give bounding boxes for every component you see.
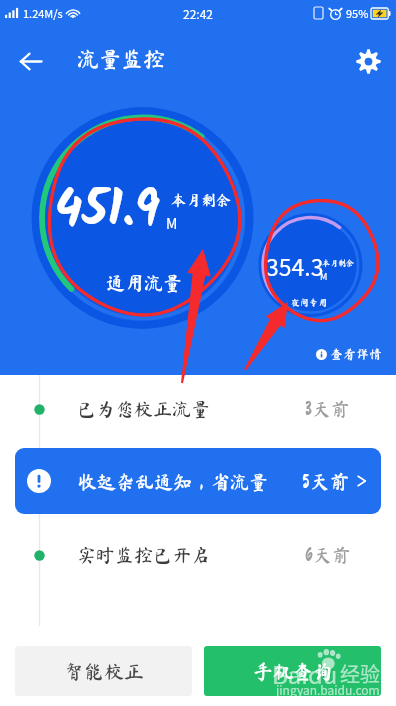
staticText: 手机查询 bbox=[253, 661, 333, 681]
staticText: 5天前 bbox=[302, 471, 350, 491]
staticText: M bbox=[166, 213, 178, 233]
button[interactable]: 查看详情 bbox=[316, 348, 383, 361]
staticText: 354.3 bbox=[266, 249, 324, 282]
staticText: 查看详情 bbox=[330, 348, 383, 361]
button[interactable]: 手机查询 bbox=[204, 646, 381, 696]
staticText: M bbox=[320, 270, 328, 283]
button[interactable]: 实时监控已开启 bbox=[0, 521, 396, 587]
staticText: jingyan.baidu.com bbox=[276, 681, 380, 698]
button[interactable]: Back bbox=[8, 39, 52, 83]
staticText: 22:42 bbox=[183, 5, 213, 22]
button[interactable]: 夜间专用 354.3 M bbox=[259, 214, 361, 316]
staticText: 收起杂乱通知，省流量 bbox=[78, 472, 269, 491]
staticText: 6天前 bbox=[305, 545, 351, 564]
button[interactable]: 收起杂乱通知，省流量 bbox=[15, 448, 381, 514]
staticText: 本月剩余 bbox=[171, 193, 232, 208]
staticText: 智能校正 bbox=[64, 661, 144, 681]
staticText: 本月剩余 bbox=[322, 259, 354, 267]
staticText: 95% bbox=[346, 5, 369, 21]
staticText: 已为您校正流量 bbox=[77, 399, 211, 418]
button[interactable]: 已为您校正流量 bbox=[0, 375, 396, 441]
staticText: Baidu bbox=[272, 656, 338, 691]
staticText: 1.24M/s bbox=[23, 5, 63, 21]
button[interactable]: 通用流量 451.9 M bbox=[35, 111, 250, 326]
staticText: 3天前 bbox=[305, 399, 350, 418]
button[interactable]: 智能校正 bbox=[15, 646, 192, 696]
staticText: 经验 bbox=[340, 659, 380, 688]
staticText: 通用流量 bbox=[106, 273, 183, 292]
button[interactable]: Settings bbox=[346, 39, 390, 83]
staticText: 实时监控已开启 bbox=[77, 545, 211, 564]
staticText: 451.9 bbox=[55, 172, 160, 252]
staticText: 夜间专用 bbox=[291, 298, 328, 307]
staticText: 流量监控 bbox=[77, 48, 166, 70]
